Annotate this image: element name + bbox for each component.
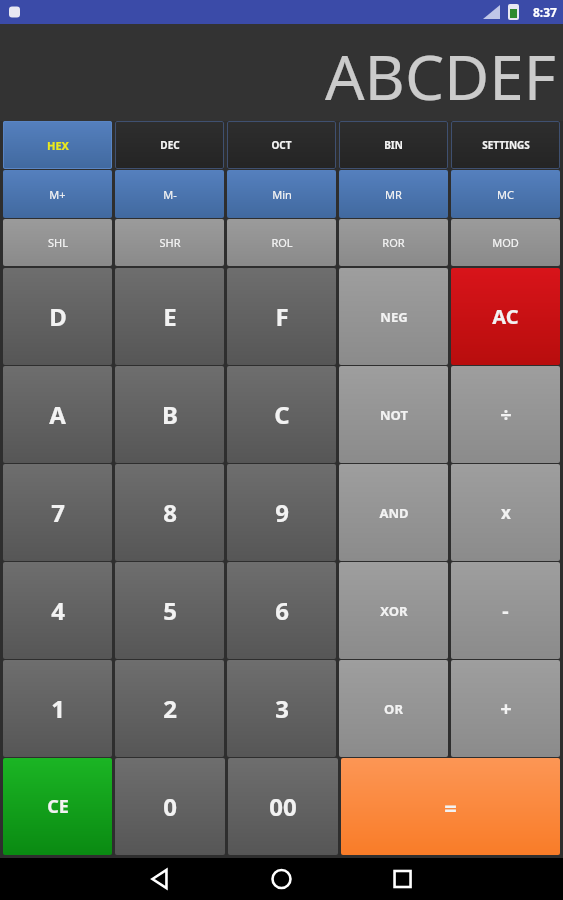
button[interactable]: 6 xyxy=(227,562,336,659)
staticText: NOT xyxy=(380,406,408,424)
button[interactable]: MR xyxy=(339,170,448,218)
staticText: AND xyxy=(379,504,409,522)
button[interactable]: M+ xyxy=(3,170,112,218)
staticText: 8 xyxy=(163,496,177,529)
staticText: ÷ xyxy=(500,401,512,428)
staticText: 9 xyxy=(275,496,289,529)
staticText: CE xyxy=(47,794,69,819)
button[interactable]: D xyxy=(3,268,112,365)
button[interactable]: XOR xyxy=(339,562,448,659)
staticText: OCT xyxy=(271,138,292,152)
staticText: 0 xyxy=(163,790,177,823)
staticText: MR xyxy=(385,187,402,202)
button[interactable]: SETTINGS xyxy=(451,121,560,169)
button[interactable]: 7 xyxy=(3,464,112,561)
staticText: F xyxy=(275,300,289,333)
staticText: DEC xyxy=(160,138,180,152)
staticText: ABCDEF xyxy=(325,34,557,118)
button[interactable]: E xyxy=(115,268,224,365)
button[interactable]: - xyxy=(451,562,560,659)
staticText: MC xyxy=(497,187,514,202)
button[interactable]: + xyxy=(451,660,560,757)
button[interactable]: SHR xyxy=(115,219,224,266)
button[interactable]: ÷ xyxy=(451,366,560,463)
staticText: 6 xyxy=(275,594,289,627)
staticText: - xyxy=(502,597,509,624)
staticText: x xyxy=(501,501,511,524)
button[interactable]: OCT xyxy=(227,121,336,169)
staticText: ROR xyxy=(382,235,405,250)
button[interactable]: 3 xyxy=(227,660,336,757)
button[interactable]: OR xyxy=(339,660,448,757)
staticText: MOD xyxy=(492,235,519,250)
button[interactable]: AND xyxy=(339,464,448,561)
button[interactable]: NOT xyxy=(339,366,448,463)
staticText: 5 xyxy=(163,594,177,627)
staticText: A xyxy=(49,398,66,431)
staticText: OR xyxy=(384,700,403,718)
staticText: ROL xyxy=(271,235,293,250)
button[interactable]: A xyxy=(3,366,112,463)
button[interactable]: 9 xyxy=(227,464,336,561)
button[interactable]: Recent apps xyxy=(373,858,433,900)
staticText: SETTINGS xyxy=(482,138,530,152)
staticText: AC xyxy=(492,303,519,330)
staticText: B xyxy=(162,398,178,431)
button[interactable]: Back xyxy=(130,858,190,900)
button[interactable]: 2 xyxy=(115,660,224,757)
staticText: Min xyxy=(272,187,292,202)
button[interactable]: SHL xyxy=(3,219,112,266)
button[interactable]: 4 xyxy=(3,562,112,659)
staticText: 00 xyxy=(269,790,297,823)
staticText: M+ xyxy=(49,187,66,202)
staticText: SHL xyxy=(48,235,68,250)
button[interactable]: 0 xyxy=(115,758,225,855)
staticText: 1 xyxy=(51,692,65,725)
button[interactable]: F xyxy=(227,268,336,365)
button[interactable]: 00 xyxy=(228,758,338,855)
button[interactable]: 5 xyxy=(115,562,224,659)
button[interactable]: x xyxy=(451,464,560,561)
button[interactable]: MOD xyxy=(451,219,560,266)
staticText: = xyxy=(444,792,457,822)
button[interactable]: 1 xyxy=(3,660,112,757)
button[interactable]: NEG xyxy=(339,268,448,365)
button[interactable]: ROL xyxy=(227,219,336,266)
button[interactable]: BIN xyxy=(339,121,448,169)
staticText: + xyxy=(500,695,512,722)
button[interactable]: 8 xyxy=(115,464,224,561)
staticText: BIN xyxy=(384,138,403,152)
button[interactable]: AC xyxy=(451,268,560,365)
staticText: NEG xyxy=(380,308,408,326)
button[interactable]: Min xyxy=(227,170,336,218)
staticText: SHR xyxy=(159,235,181,250)
staticText: HEX xyxy=(47,138,69,153)
staticText: 2 xyxy=(163,692,177,725)
button[interactable]: CE xyxy=(3,758,112,855)
staticText: D xyxy=(49,300,67,333)
staticText: E xyxy=(163,300,177,333)
staticText: 7 xyxy=(51,496,65,529)
staticText: XOR xyxy=(380,602,408,620)
button[interactable]: DEC xyxy=(115,121,224,169)
button[interactable]: Home xyxy=(252,858,312,900)
staticText: 3 xyxy=(275,692,289,725)
button[interactable]: C xyxy=(227,366,336,463)
button[interactable]: = xyxy=(341,758,560,855)
button[interactable]: M- xyxy=(115,170,224,218)
staticText: M- xyxy=(163,187,177,202)
staticText: 4 xyxy=(51,594,65,627)
button[interactable]: ROR xyxy=(339,219,448,266)
staticText: C xyxy=(274,398,290,431)
button[interactable]: MC xyxy=(451,170,560,218)
staticText: 8:37 xyxy=(533,4,557,20)
button[interactable]: HEX xyxy=(3,121,112,169)
button[interactable]: B xyxy=(115,366,224,463)
